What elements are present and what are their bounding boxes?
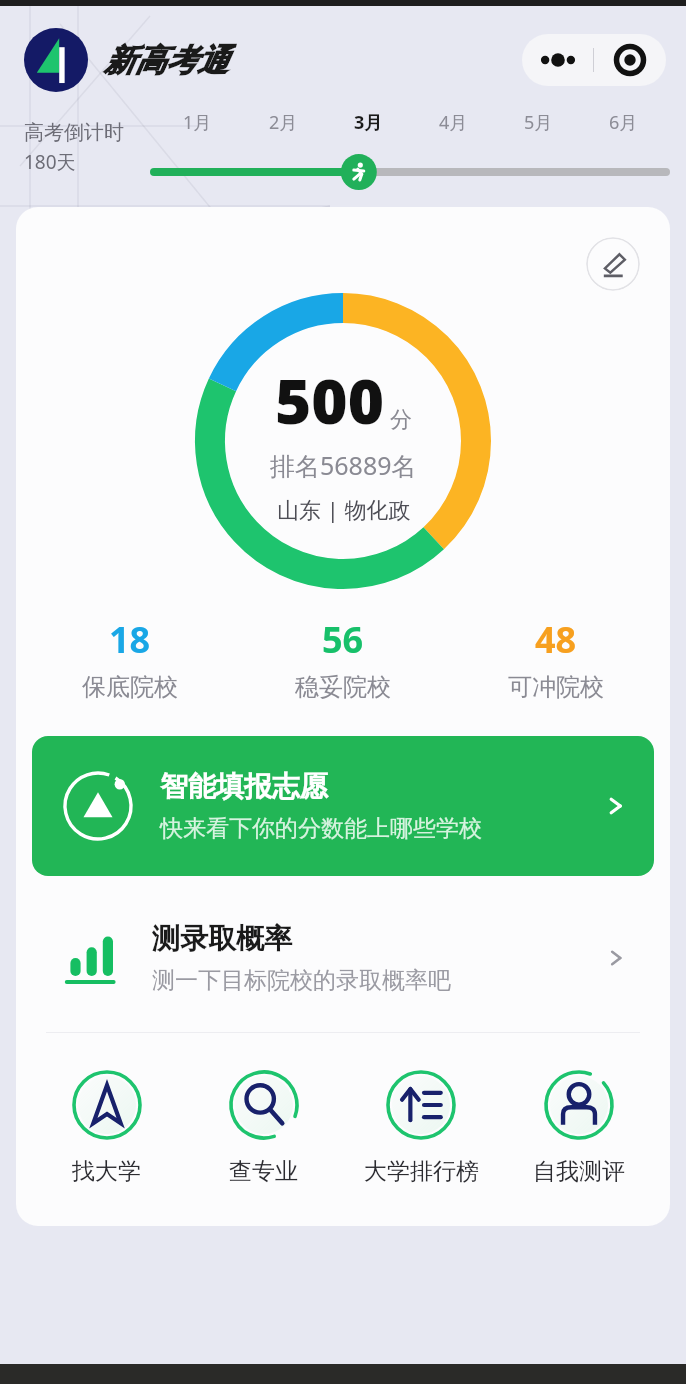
staticText: 大学排行榜 [364,1157,479,1186]
staticText: 山东 | 物化政 [277,494,411,524]
staticText: 4月 [439,110,468,135]
staticText: 排名56889名 [270,448,417,482]
staticText: 自我测评 [533,1157,625,1186]
staticText: 测一下目标院校的录取概率吧 [152,966,451,995]
staticText: 找大学 [72,1157,141,1186]
staticText: 保底院校 [82,672,178,702]
button[interactable]: App logo [24,28,88,92]
button[interactable]: More options [522,34,593,86]
staticText: 56 [322,615,364,664]
button[interactable]: 自我测评 [500,1067,658,1186]
staticText: 5月 [524,110,553,135]
button[interactable]: 大学排行榜 [342,1067,500,1186]
staticText: 180天 [24,149,76,175]
staticText: 1月 [183,110,212,135]
button[interactable]: 56 [236,609,449,708]
staticText: 快来看下你的分数能上哪些学校 [160,814,482,843]
staticText: 500 [275,358,384,442]
staticText: 测录取概率 [152,921,292,956]
staticText: 3月 [354,110,383,135]
button[interactable]: Countdown progress [154,151,666,185]
staticText: 查专业 [229,1157,298,1186]
button[interactable]: 找大学 [28,1067,185,1186]
staticText: 2月 [269,110,298,135]
staticText: 6月 [609,110,638,135]
button[interactable]: 18 [24,609,236,708]
staticText: 智能填报志愿 [160,769,328,804]
staticText: 高考倒计时 [24,120,124,145]
staticText: 稳妥院校 [295,672,391,702]
staticText: 新高考通 [104,41,228,80]
staticText: 48 [535,615,577,664]
staticText: 可冲院校 [508,672,604,702]
button[interactable]: Target [594,34,666,86]
staticText: 18 [109,615,151,664]
button[interactable]: Edit score [586,237,640,291]
button[interactable]: 智能填报志愿 [32,736,654,876]
button[interactable]: 测录取概率 [16,898,670,1018]
staticText: 分 [390,406,412,434]
button[interactable]: 查专业 [185,1067,342,1186]
button[interactable]: 48 [449,609,662,708]
